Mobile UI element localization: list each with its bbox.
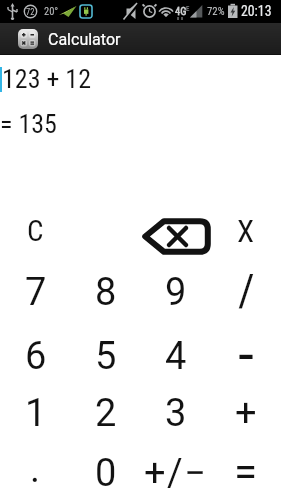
button[interactable]: 8: [71, 260, 141, 320]
staticText: 123 + 12: [2, 64, 92, 94]
staticText: E: [186, 5, 190, 13]
button[interactable]: 1: [0, 380, 71, 440]
staticText: 72%: [207, 5, 225, 18]
button[interactable]: 0: [71, 440, 141, 500]
button[interactable]: .: [0, 440, 71, 500]
staticText: C: [27, 214, 44, 248]
button[interactable]: 9: [141, 260, 211, 320]
button[interactable]: 6: [0, 320, 71, 380]
staticText: +/−: [144, 451, 208, 496]
button[interactable]: 3: [141, 380, 211, 440]
staticText: 72: [26, 7, 35, 17]
button[interactable]: X: [211, 200, 281, 260]
button[interactable]: C: [0, 200, 71, 260]
staticText: 5: [95, 334, 117, 379]
button[interactable]: [211, 320, 281, 380]
staticText: 4G: [175, 5, 187, 17]
staticText: 6: [25, 334, 47, 379]
button[interactable]: 123 + 12: [0, 64, 281, 94]
staticText: 8: [95, 270, 117, 315]
staticText: 1: [25, 391, 47, 436]
staticText: X: [237, 213, 255, 249]
staticText: =: [234, 447, 258, 496]
button[interactable]: 5: [71, 320, 141, 380]
button[interactable]: =: [211, 440, 281, 500]
staticText: 20:13: [241, 3, 272, 19]
button[interactable]: 2: [71, 380, 141, 440]
staticText: = 135: [0, 109, 57, 139]
button[interactable]: +/−: [141, 440, 211, 500]
staticText: 7: [25, 270, 47, 315]
staticText: .: [30, 447, 41, 492]
button[interactable]: 7: [0, 260, 71, 320]
staticText: 2: [95, 391, 117, 436]
button[interactable]: 4: [141, 320, 211, 380]
staticText: /: [238, 264, 255, 317]
staticText: 0: [95, 451, 117, 496]
staticText: +: [235, 391, 257, 436]
staticText: 4: [165, 334, 187, 379]
button[interactable]: /: [211, 260, 281, 320]
button[interactable]: +: [211, 380, 281, 440]
staticText: 9: [165, 270, 187, 315]
staticText: 3: [165, 391, 187, 436]
button[interactable]: Calculator: [0, 23, 281, 55]
button[interactable]: [141, 200, 211, 260]
staticText: Calculator: [48, 30, 121, 49]
staticText: 20°: [44, 5, 59, 17]
